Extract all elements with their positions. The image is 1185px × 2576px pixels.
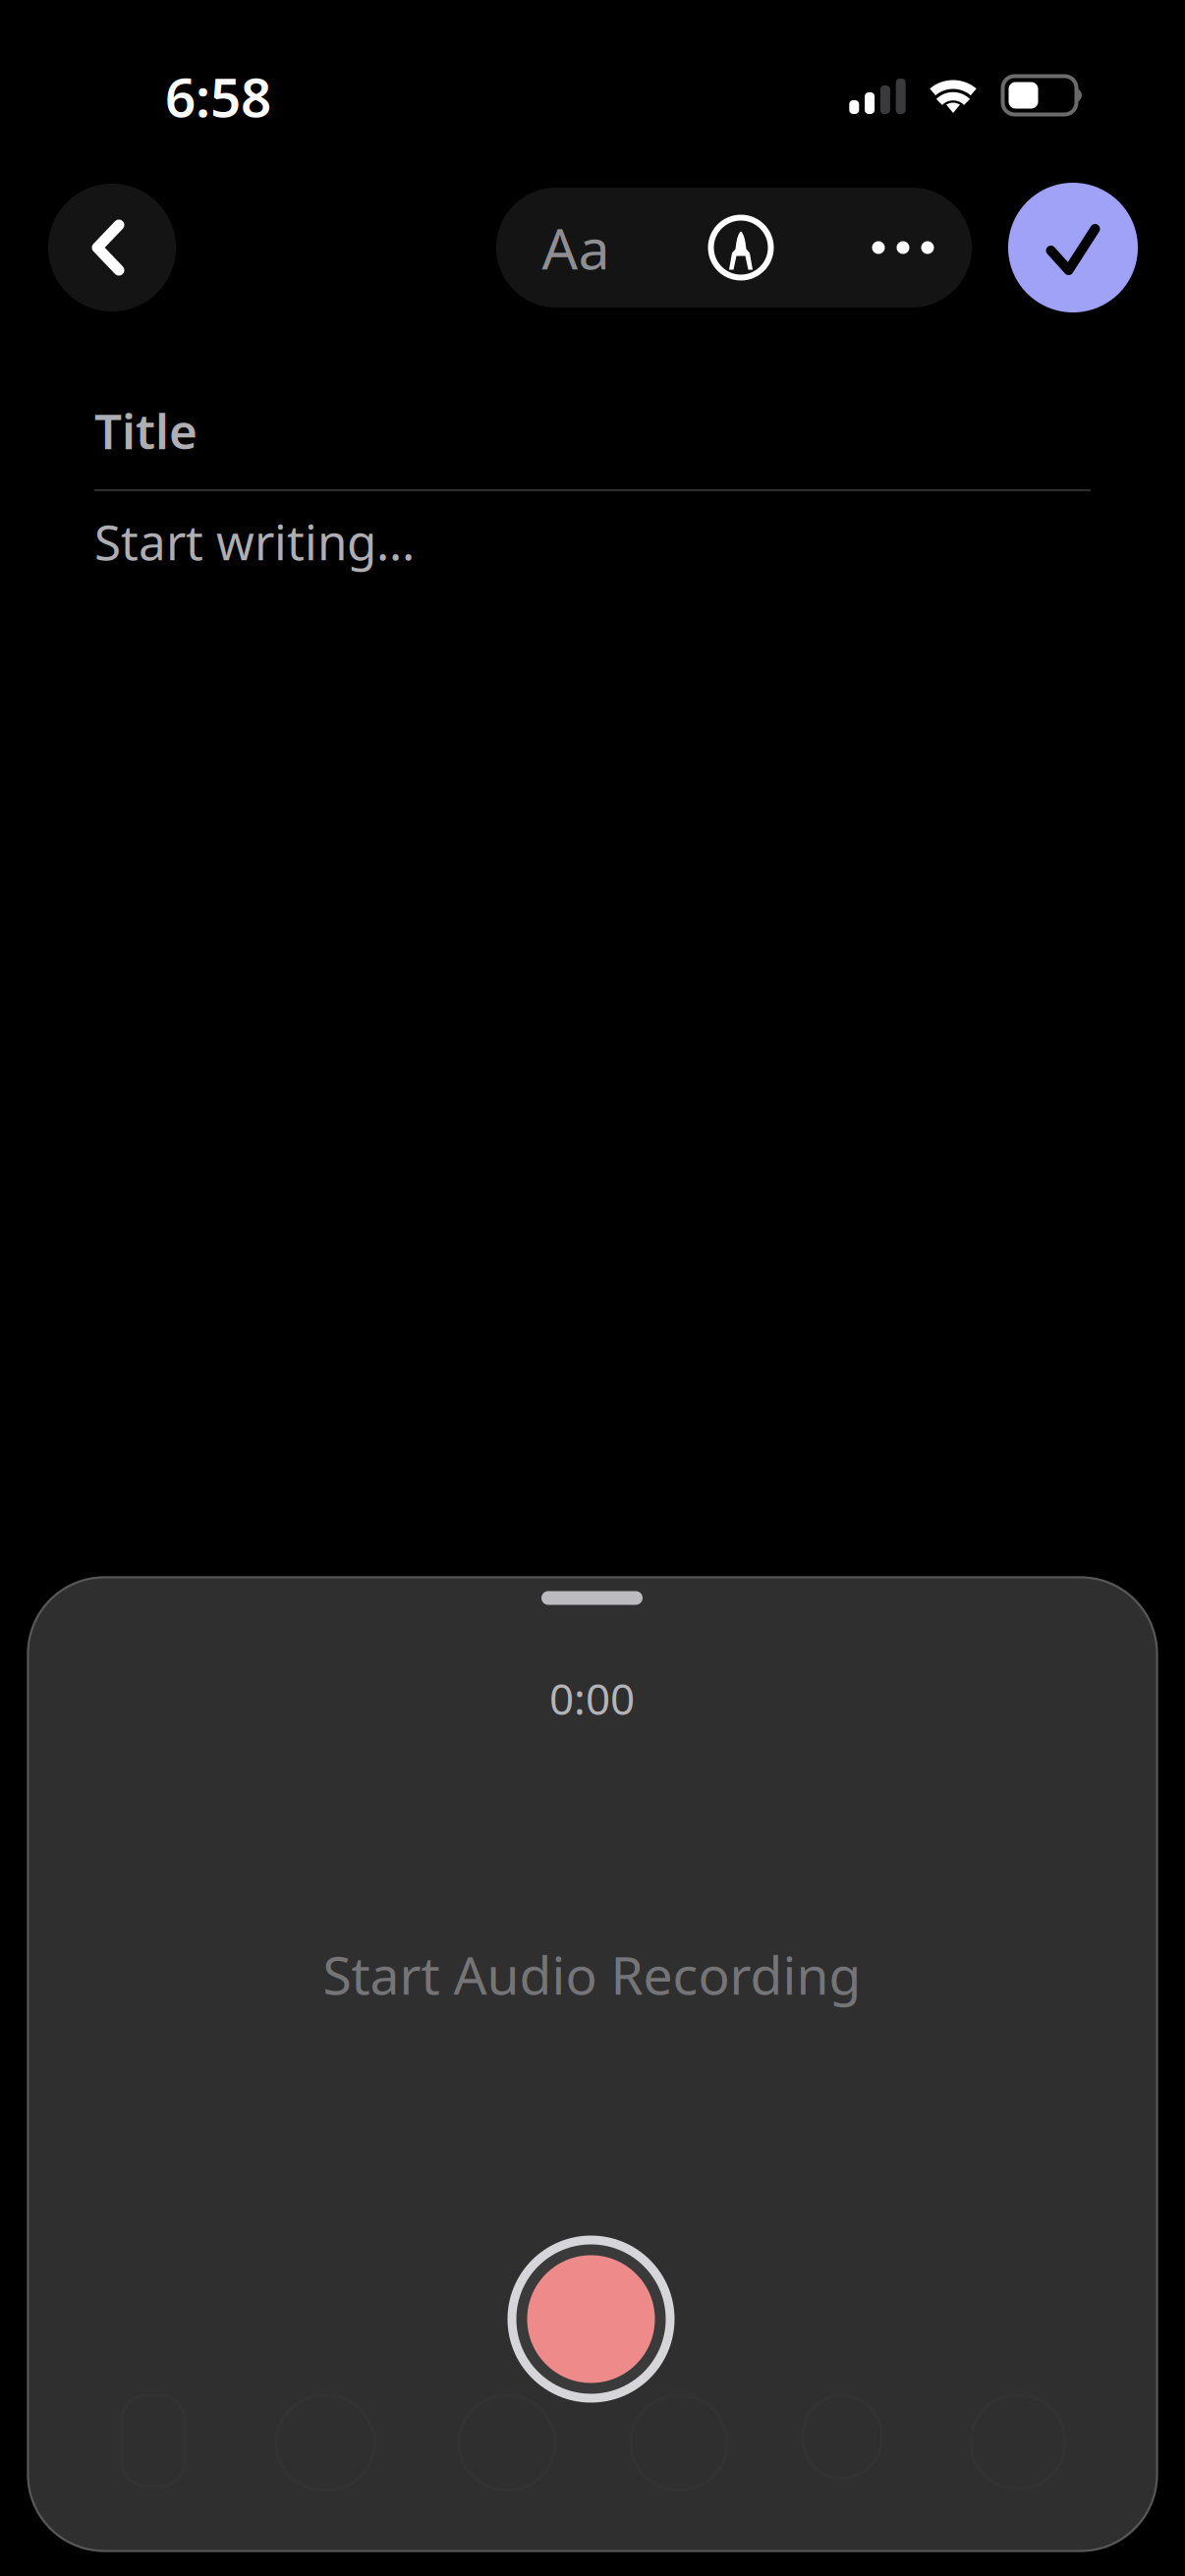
staticText: 6:58 [165,61,271,132]
button[interactable]: Back [48,184,176,311]
button[interactable]: More [839,188,967,308]
button[interactable]: Start recording [507,2235,676,2404]
staticText: Start Audio Recording [323,1939,861,2009]
staticText: Aa [542,210,610,285]
button[interactable]: Done [1008,183,1138,312]
button[interactable]: Title [94,395,1091,466]
staticText: Title [94,398,197,462]
staticText: Start writing... [94,509,415,573]
button[interactable]: Markup [681,188,801,308]
button[interactable]: Start writing... [94,503,1091,580]
button[interactable]: Aa [502,188,649,308]
staticText: 0:00 [549,1669,635,1727]
